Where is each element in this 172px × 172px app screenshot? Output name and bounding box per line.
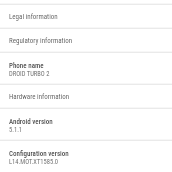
staticText: Hardware information <box>9 93 70 101</box>
staticText: Regulatory information <box>9 37 73 45</box>
button[interactable]: Legal information <box>0 5 172 27</box>
staticText: Phone name <box>9 62 44 70</box>
staticText: DROID TURBO 2 <box>9 70 50 78</box>
staticText: Android version <box>9 118 53 126</box>
other: About phone <box>0 0 172 172</box>
staticText: Configuration version <box>9 150 69 158</box>
staticText: L14.MOT.XT1585.0 <box>9 158 59 166</box>
staticText: 5.1.1 <box>9 126 23 134</box>
staticText: Legal information <box>9 13 58 21</box>
button[interactable]: Android version <box>0 109 172 139</box>
button[interactable]: Hardware information <box>0 85 172 107</box>
button[interactable]: Configuration version <box>0 141 172 171</box>
button[interactable]: Phone name <box>0 53 172 83</box>
button[interactable]: Regulatory information <box>0 29 172 51</box>
